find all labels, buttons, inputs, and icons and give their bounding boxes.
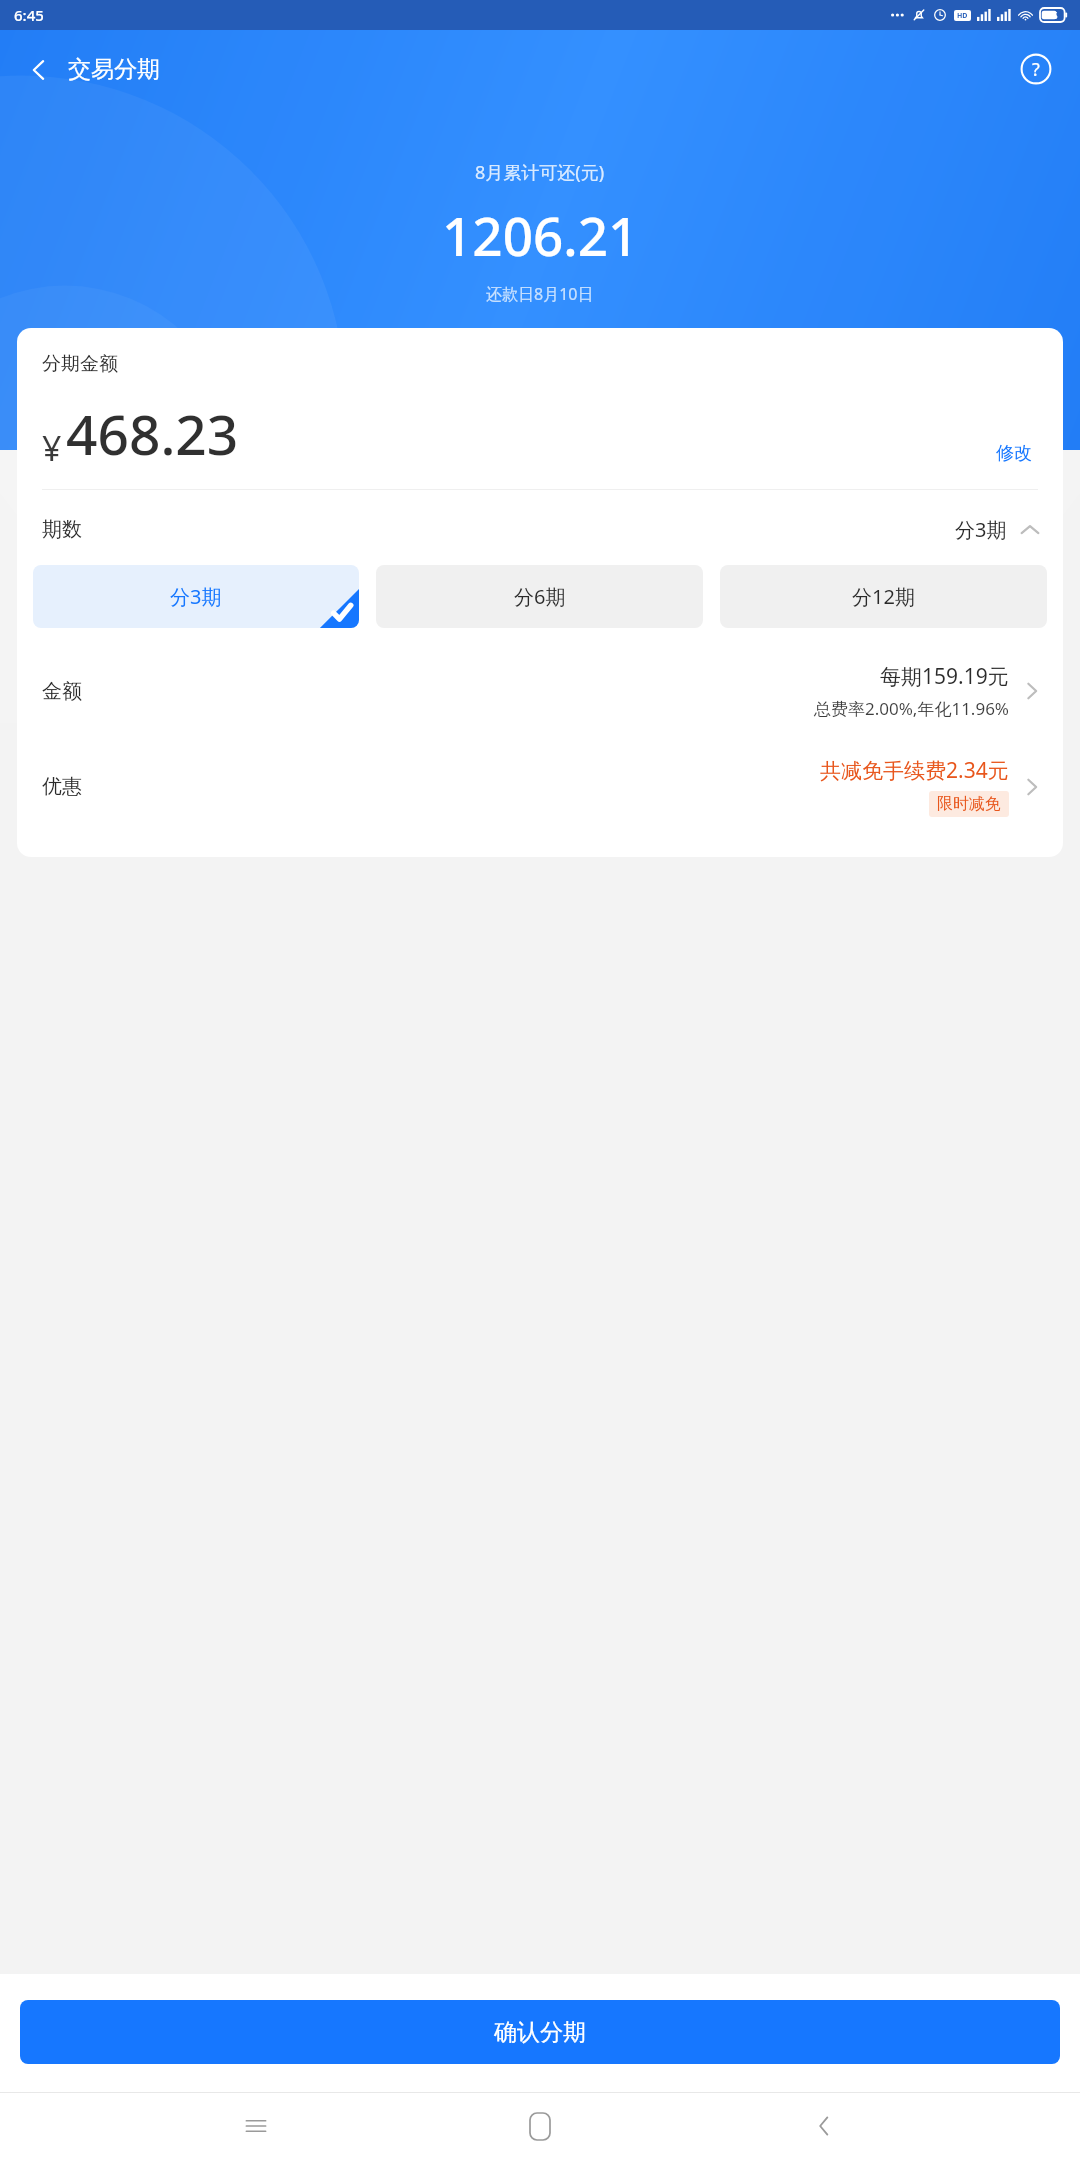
staticText: 金额 xyxy=(42,679,82,704)
staticText: 1206.21 xyxy=(442,199,639,271)
button[interactable]: 确认分期 xyxy=(20,2000,1060,2064)
button[interactable]: 分6期 xyxy=(376,565,703,628)
staticText: 每期159.19元 xyxy=(880,662,1009,691)
staticText: 限时减免 xyxy=(937,794,1001,814)
staticText: 分6期 xyxy=(514,583,566,610)
staticText: HD xyxy=(957,11,968,21)
button[interactable]: Back xyxy=(796,2098,852,2154)
button[interactable]: Recents xyxy=(228,2098,284,2154)
staticText: 优惠 xyxy=(42,774,82,799)
button[interactable]: Help xyxy=(1016,49,1056,89)
other: Back xyxy=(26,57,52,83)
staticText: 分3期 xyxy=(955,516,1007,543)
button[interactable]: 修改 xyxy=(990,436,1038,471)
staticText: 分3期 xyxy=(170,583,222,610)
staticText: 分12期 xyxy=(852,583,915,610)
button[interactable]: 分12期 xyxy=(720,565,1047,628)
button[interactable]: 金额 xyxy=(17,654,1063,730)
staticText: ¥ xyxy=(42,425,62,471)
staticText: 期数 xyxy=(42,517,82,542)
button[interactable]: Home xyxy=(512,2098,568,2154)
button[interactable]: 期数 xyxy=(17,490,1063,561)
staticText: 修改 xyxy=(996,442,1032,465)
button[interactable]: Back xyxy=(0,55,168,84)
staticText: 共减免手续费2.34元 xyxy=(820,756,1009,785)
staticText: 8月累计可还(元) xyxy=(475,160,605,185)
staticText: 6:45 xyxy=(14,5,44,25)
staticText: 还款日8月10日 xyxy=(486,283,594,305)
staticText: 分期金额 xyxy=(42,352,118,376)
staticText: 65 xyxy=(1040,9,1065,21)
staticText: ? xyxy=(1032,57,1040,82)
button[interactable]: 优惠 xyxy=(17,756,1063,827)
staticText: 确认分期 xyxy=(494,2018,586,2047)
button[interactable]: 分3期 xyxy=(33,565,359,628)
staticText: 交易分期 xyxy=(68,55,160,84)
staticText: 总费率2.00%,年化11.96% xyxy=(814,697,1009,720)
staticText: 468.23 xyxy=(66,396,239,471)
